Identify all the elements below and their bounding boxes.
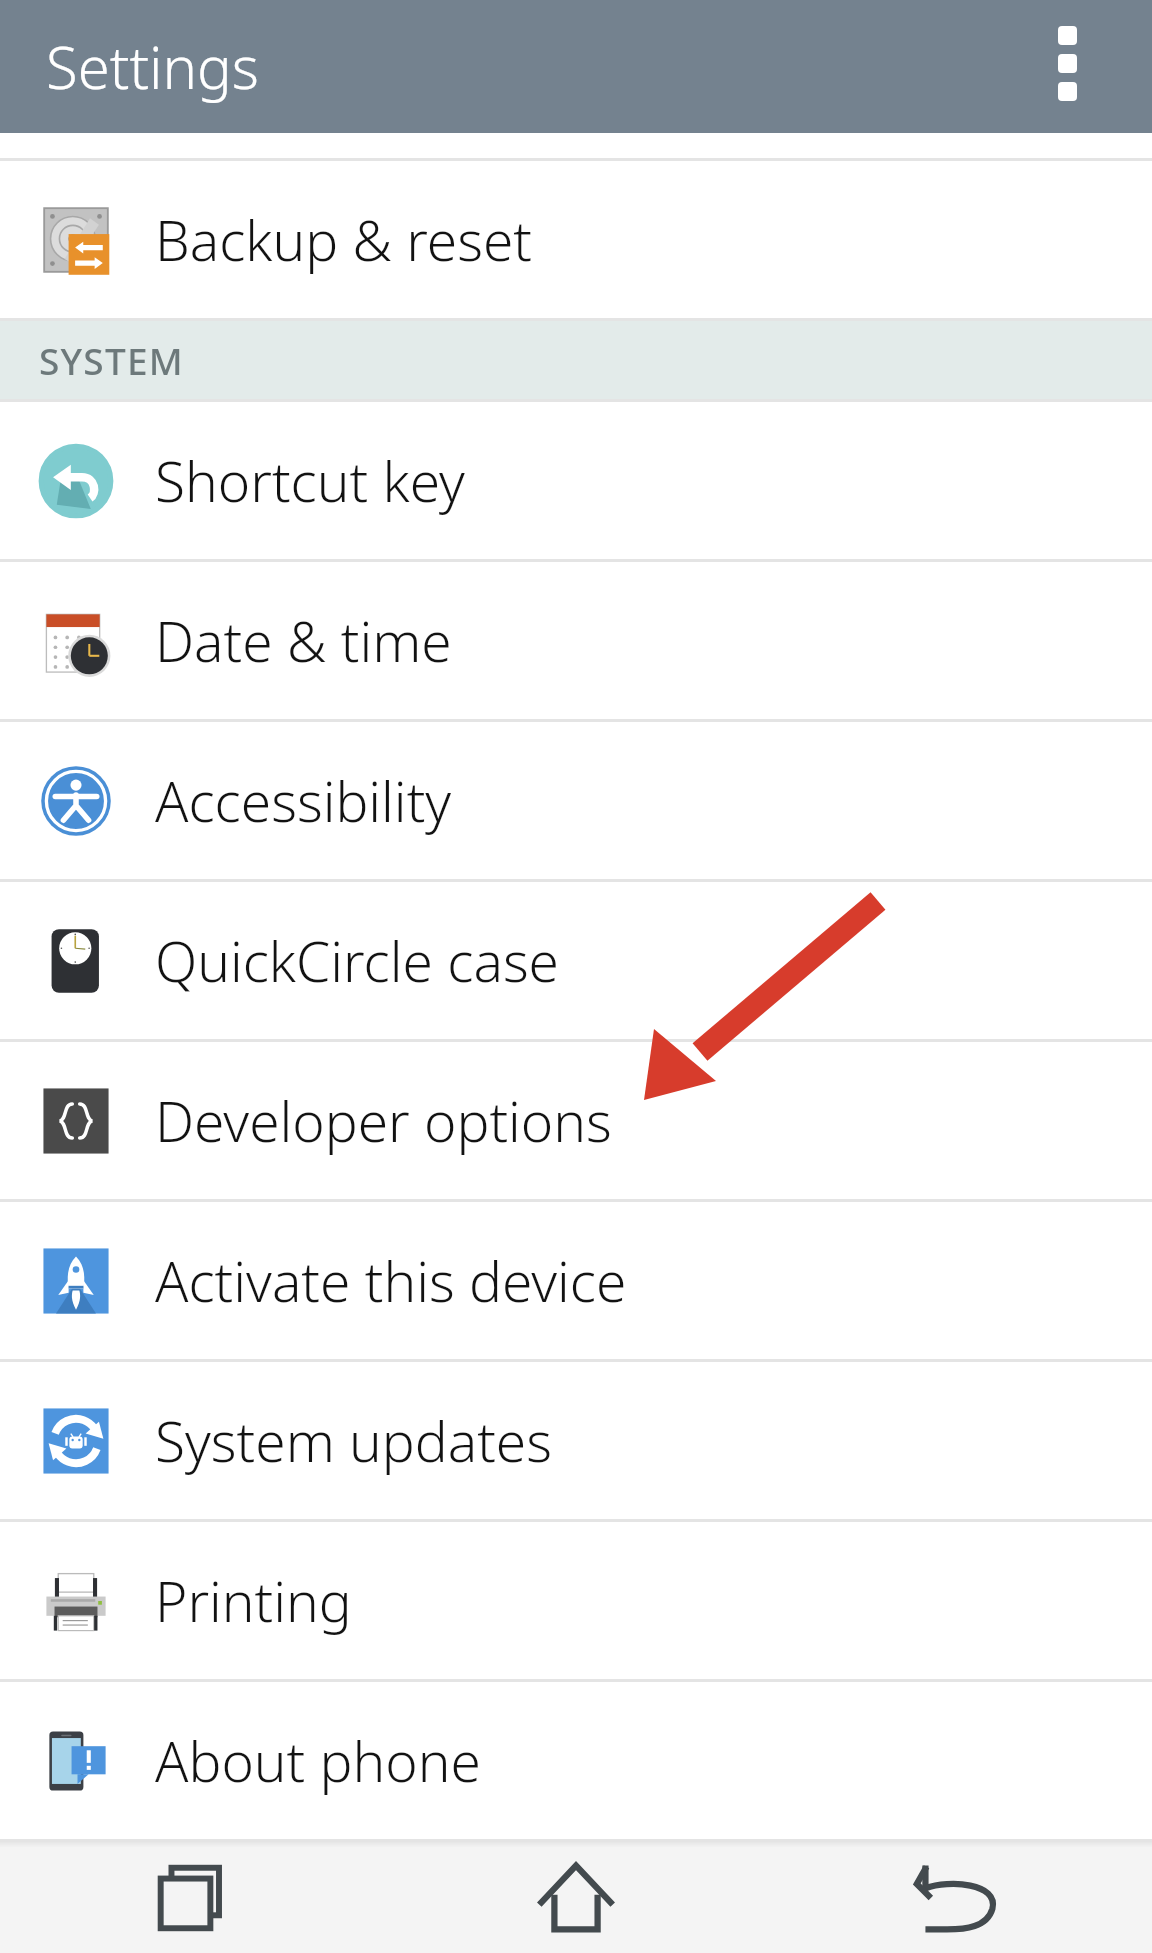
button[interactable]: More options bbox=[1032, 0, 1102, 133]
button[interactable]: About phone bbox=[0, 1682, 1152, 1839]
staticText: Shortcut key bbox=[155, 443, 465, 518]
button[interactable]: Backup & reset bbox=[0, 161, 1152, 318]
staticText: QuickCircle case bbox=[155, 923, 559, 998]
button[interactable]: Accessibility bbox=[0, 722, 1152, 879]
staticText: Activate this device bbox=[155, 1243, 627, 1318]
staticText: Settings bbox=[46, 27, 259, 106]
button[interactable]: Home bbox=[384, 1842, 768, 1953]
staticText: System updates bbox=[155, 1403, 552, 1478]
button[interactable]: System updates bbox=[0, 1362, 1152, 1519]
staticText: Printing bbox=[155, 1563, 352, 1638]
button[interactable]: Printing bbox=[0, 1522, 1152, 1679]
staticText: Date & time bbox=[155, 603, 452, 678]
button[interactable]: Shortcut key bbox=[0, 402, 1152, 559]
button[interactable]: QuickCircle case bbox=[0, 882, 1152, 1039]
staticText: Backup & reset bbox=[155, 202, 532, 277]
button[interactable]: Date & time bbox=[0, 562, 1152, 719]
staticText: Developer options bbox=[155, 1083, 612, 1158]
button[interactable]: Activate this device bbox=[0, 1202, 1152, 1359]
staticText: Accessibility bbox=[155, 763, 452, 838]
staticText: SYSTEM bbox=[39, 335, 184, 385]
staticText: About phone bbox=[155, 1723, 481, 1798]
button[interactable]: Back bbox=[768, 1842, 1152, 1953]
button[interactable]: Developer options bbox=[0, 1042, 1152, 1199]
button[interactable]: Recent apps bbox=[0, 1842, 384, 1953]
